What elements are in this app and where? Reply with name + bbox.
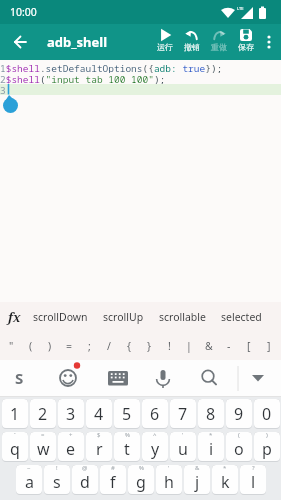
button[interactable]: ~ <box>16 465 42 494</box>
staticText: ` <box>14 432 16 439</box>
button[interactable]: [ <box>239 332 259 360</box>
staticText: 0 <box>262 403 272 425</box>
button[interactable]: 4 <box>86 399 112 428</box>
button[interactable] <box>106 362 132 394</box>
staticText: LTE <box>237 6 244 11</box>
button[interactable]: fx <box>8 309 21 326</box>
staticText: scrollDown <box>33 310 88 324</box>
staticText: ! <box>168 339 171 353</box>
staticText: r <box>96 438 103 460</box>
button[interactable]: | <box>179 332 199 360</box>
button[interactable] <box>56 362 82 394</box>
staticText: h <box>164 471 174 493</box>
button[interactable]: 保存 <box>232 24 259 60</box>
button[interactable]: scrollUp <box>103 310 144 324</box>
button[interactable]: ' <box>156 465 182 494</box>
button[interactable]: ) <box>254 432 280 461</box>
button[interactable] <box>150 362 176 394</box>
staticText: ? <box>252 465 255 472</box>
staticText: w <box>37 438 50 460</box>
button[interactable]: ( <box>21 332 40 360</box>
staticText: fx <box>8 309 21 326</box>
staticText: | <box>186 339 192 353</box>
button[interactable]: * <box>198 432 224 461</box>
staticText: * <box>223 465 227 472</box>
button[interactable]: scrollDown <box>33 310 88 324</box>
button[interactable]: - <box>219 332 239 360</box>
button[interactable]: 5 <box>114 399 140 428</box>
staticText: scrollUp <box>103 310 144 324</box>
button[interactable]: { <box>119 332 139 360</box>
staticText: u <box>178 438 188 460</box>
button[interactable]: # <box>100 465 126 494</box>
staticText: y <box>151 438 160 460</box>
staticText: s <box>53 471 61 493</box>
staticText: 1 <box>10 403 20 425</box>
button[interactable]: & <box>184 465 210 494</box>
staticText: ; <box>88 339 91 353</box>
button[interactable] <box>246 362 272 394</box>
button[interactable]: * <box>212 465 238 494</box>
button[interactable]: ! <box>159 332 179 360</box>
staticText: 2 <box>38 403 48 425</box>
staticText: i <box>209 438 214 460</box>
staticText: % <box>125 432 130 439</box>
button[interactable]: 重做 <box>205 24 232 60</box>
button[interactable]: 8 <box>198 399 224 428</box>
button[interactable]: & <box>199 332 219 360</box>
staticText: ) <box>266 432 268 439</box>
button[interactable]: 7 <box>170 399 196 428</box>
button[interactable]: ] <box>259 332 279 360</box>
staticText: $ <box>97 432 101 439</box>
staticText: 运行 <box>157 42 173 52</box>
button[interactable]: + <box>58 432 84 461</box>
staticText: # <box>111 465 115 472</box>
button[interactable]: ! <box>44 465 70 494</box>
staticText: ( <box>29 339 33 353</box>
button[interactable]: " <box>2 332 21 360</box>
button[interactable]: 撤销 <box>178 24 205 60</box>
staticText: & <box>195 465 200 472</box>
button[interactable] <box>8 30 32 54</box>
button[interactable]: ( <box>226 432 252 461</box>
button[interactable]: / <box>99 332 119 360</box>
button[interactable]: 0 <box>254 399 280 428</box>
staticText: l <box>251 471 256 493</box>
staticText: 3 <box>66 403 76 425</box>
staticText: ) <box>48 339 52 353</box>
button[interactable]: $ <box>86 432 112 461</box>
button[interactable]: ; <box>79 332 99 360</box>
staticText: " <box>9 339 14 353</box>
button[interactable]: @ <box>72 465 98 494</box>
button[interactable]: ' <box>170 432 196 461</box>
button[interactable] <box>197 362 223 394</box>
button[interactable]: ? <box>240 465 266 494</box>
button[interactable]: 1 <box>2 399 28 428</box>
button[interactable]: 6 <box>142 399 168 428</box>
button[interactable]: = <box>30 432 56 461</box>
staticText: k <box>221 471 230 493</box>
button[interactable]: ` <box>2 432 28 461</box>
button[interactable] <box>259 24 279 60</box>
button[interactable]: scrollable <box>159 310 206 324</box>
staticText: [ <box>247 339 251 353</box>
staticText: 重做 <box>211 42 227 52</box>
button[interactable]: ^ <box>142 432 168 461</box>
staticText: { <box>127 339 131 353</box>
button[interactable]: selected <box>221 310 262 324</box>
button[interactable]: 2 <box>30 399 56 428</box>
button[interactable]: S <box>8 362 30 394</box>
staticText: S <box>15 368 24 388</box>
button[interactable]: } <box>139 332 159 360</box>
button[interactable]: 运行 <box>151 24 178 60</box>
button[interactable]: ) <box>40 332 59 360</box>
button[interactable]: 9 <box>226 399 252 428</box>
button[interactable]: = <box>59 332 79 360</box>
button[interactable]: % <box>114 432 140 461</box>
button[interactable]: 3 <box>58 399 84 428</box>
staticText: 9 <box>234 403 244 425</box>
staticText: = <box>41 432 45 439</box>
staticText: 3 <box>0 84 6 95</box>
button[interactable]: % <box>128 465 154 494</box>
staticText: ! <box>56 465 58 472</box>
